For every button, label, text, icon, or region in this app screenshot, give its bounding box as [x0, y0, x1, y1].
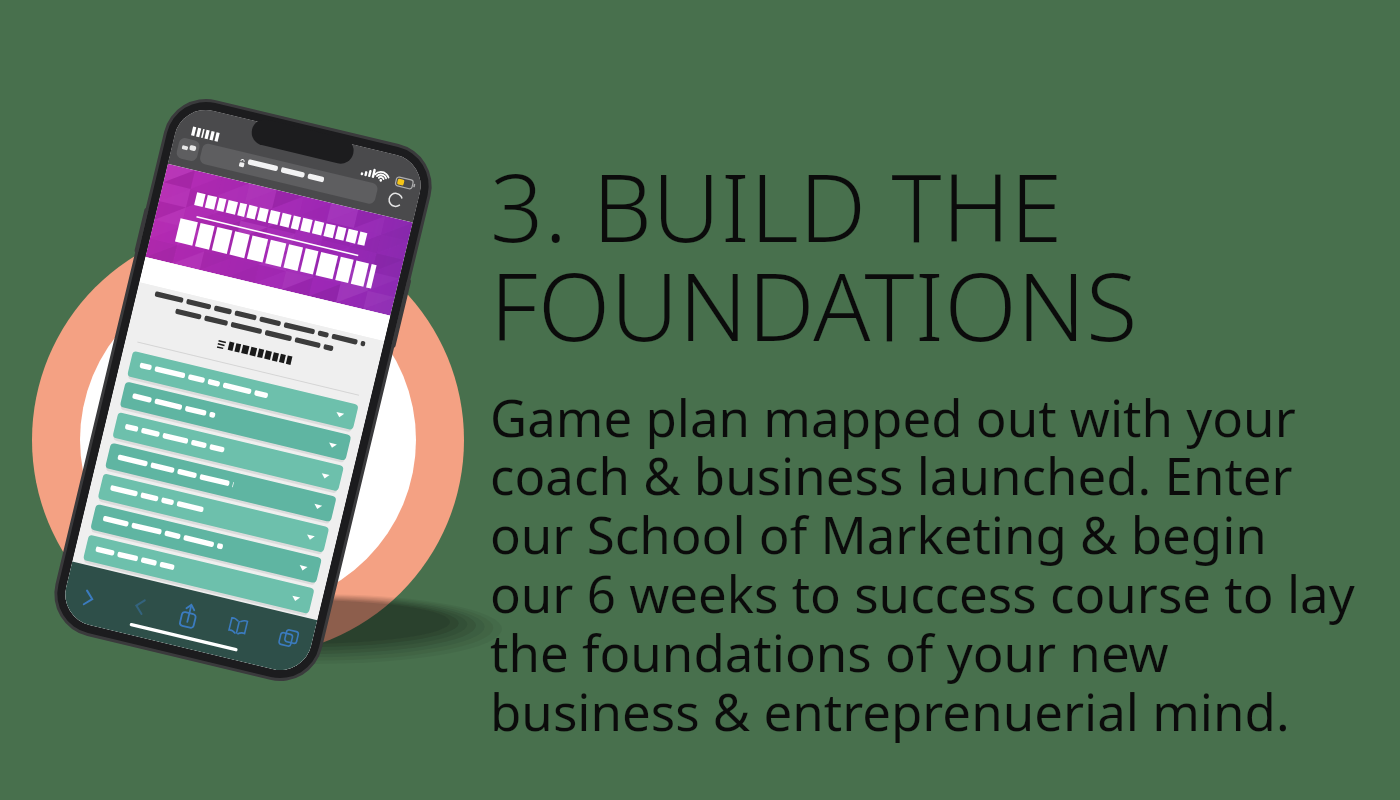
- button[interactable]: 3. BUILD THE FOUNDATIONS: [490, 142, 1360, 746]
- staticText: Game plan mapped out with your coach & b…: [490, 382, 1360, 746]
- other: School of Marketing app preview: [0, 0, 1400, 800]
- staticText: 3. BUILD THE FOUNDATIONS: [490, 142, 1138, 368]
